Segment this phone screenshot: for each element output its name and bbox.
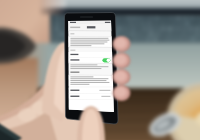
button[interactable]: Hand holding phone showing settings (0, 0, 200, 140)
other: Hand holding phone showing settings (0, 0, 200, 140)
